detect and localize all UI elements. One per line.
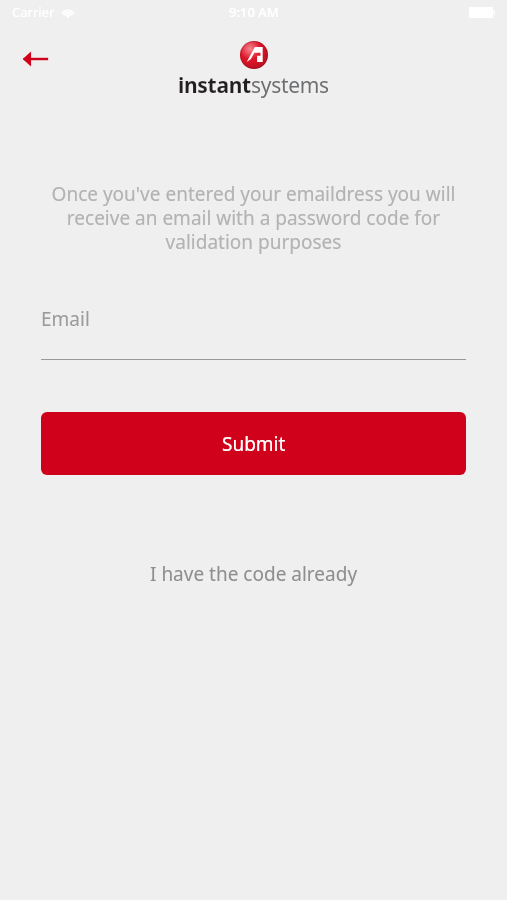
button[interactable]: Email xyxy=(41,306,466,360)
staticText: Once you've entered your emaildress you … xyxy=(48,181,459,254)
staticText: instant xyxy=(178,71,251,100)
button[interactable]: Back xyxy=(8,38,62,80)
staticText: 9:10 AM xyxy=(229,3,279,21)
staticText: I have the code already xyxy=(150,561,358,587)
staticText: Email xyxy=(41,306,90,332)
staticText: systems xyxy=(251,71,329,100)
button[interactable]: I have the code already xyxy=(134,555,374,593)
staticText: Carrier xyxy=(12,3,55,21)
staticText: Submit xyxy=(222,431,286,457)
button[interactable]: Submit xyxy=(41,412,466,475)
